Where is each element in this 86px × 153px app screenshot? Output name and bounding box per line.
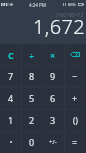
staticText: () bbox=[73, 115, 78, 126]
staticText: +/- bbox=[49, 138, 57, 146]
button[interactable]: +/- bbox=[42, 131, 64, 153]
button[interactable]: 3 bbox=[42, 109, 64, 131]
button[interactable]: 8 bbox=[21, 65, 42, 87]
staticText: 86% bbox=[68, 2, 76, 7]
staticText: 4 bbox=[8, 92, 14, 104]
button[interactable]: − bbox=[64, 65, 86, 87]
button[interactable]: × bbox=[42, 44, 64, 65]
staticText: + bbox=[72, 92, 78, 104]
staticText: = bbox=[72, 136, 78, 148]
button[interactable]: 2 bbox=[21, 109, 42, 131]
staticText: 9 bbox=[50, 70, 56, 82]
staticText: 1 bbox=[8, 114, 14, 126]
staticText: 8 bbox=[29, 70, 35, 82]
button[interactable]: 5 bbox=[21, 87, 42, 109]
staticText: ÷ bbox=[29, 49, 35, 61]
button[interactable]: 0 bbox=[21, 131, 42, 153]
button[interactable]: 6 bbox=[42, 87, 64, 109]
button[interactable]: 9 bbox=[42, 65, 64, 87]
staticText: 0 bbox=[29, 136, 35, 148]
button[interactable]: ÷ bbox=[21, 44, 42, 65]
button[interactable]: Backspace bbox=[64, 44, 86, 65]
button[interactable]: 4 bbox=[0, 87, 21, 109]
staticText: 2 bbox=[29, 114, 35, 126]
staticText: 4:24 PM bbox=[29, 2, 46, 8]
button[interactable]: = bbox=[64, 131, 86, 153]
button[interactable]: C bbox=[0, 44, 21, 65]
button[interactable]: 1 bbox=[0, 109, 21, 131]
staticText: 3 bbox=[50, 114, 56, 126]
staticText: C bbox=[8, 49, 14, 61]
staticText: 7 bbox=[8, 70, 14, 82]
button[interactable]: 7 bbox=[0, 65, 21, 87]
staticText: (160+93+72 bbox=[56, 12, 84, 19]
staticText: 5 bbox=[29, 92, 35, 104]
staticText: × bbox=[50, 49, 56, 61]
staticText: 1,672 bbox=[33, 13, 86, 40]
button[interactable]: () bbox=[64, 109, 86, 131]
staticText: − bbox=[72, 70, 78, 82]
button[interactable]: + bbox=[64, 87, 86, 109]
button[interactable]: Decimal point bbox=[0, 131, 21, 153]
staticText: 6 bbox=[50, 92, 56, 104]
